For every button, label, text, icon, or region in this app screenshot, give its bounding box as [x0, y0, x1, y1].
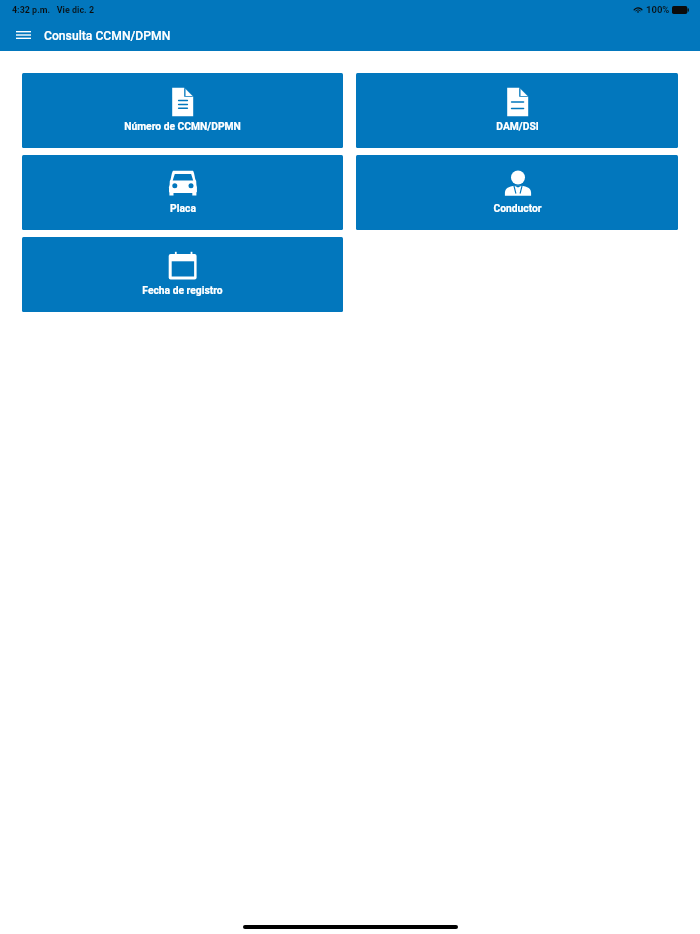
- staticText: Placa: [170, 202, 196, 214]
- button[interactable]: Conductor: [356, 155, 678, 230]
- button[interactable]: Open navigation menu: [9, 21, 37, 49]
- staticText: 100%: [646, 4, 670, 15]
- button[interactable]: Placa: [22, 155, 343, 230]
- staticText: Conductor: [493, 202, 542, 214]
- staticText: 4:32 p.m. Vie dic. 2: [12, 4, 95, 15]
- staticText: Número de CCMN/DPMN: [124, 120, 241, 132]
- staticText: Fecha de registro: [142, 284, 223, 296]
- button[interactable]: Fecha de registro: [22, 237, 343, 312]
- button[interactable]: DAM/DSI: [356, 73, 678, 148]
- button[interactable]: Número de CCMN/DPMN: [22, 73, 343, 148]
- staticText: DAM/DSI: [496, 120, 539, 132]
- staticText: Consulta CCMN/DPMN: [44, 27, 171, 43]
